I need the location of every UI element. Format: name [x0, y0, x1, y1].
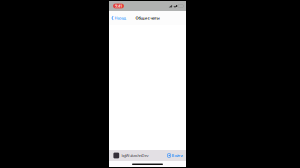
- staticText: 9:41: [115, 3, 122, 9]
- staticText: Общие чаты: [135, 15, 159, 21]
- staticText: Назад: [114, 15, 125, 21]
- button[interactable]: Назад: [110, 12, 126, 24]
- staticText: bgWukashnDev: [121, 153, 148, 158]
- staticText: Войти: [172, 153, 183, 158]
- button[interactable]: bgWukashnDev: [109, 150, 186, 161]
